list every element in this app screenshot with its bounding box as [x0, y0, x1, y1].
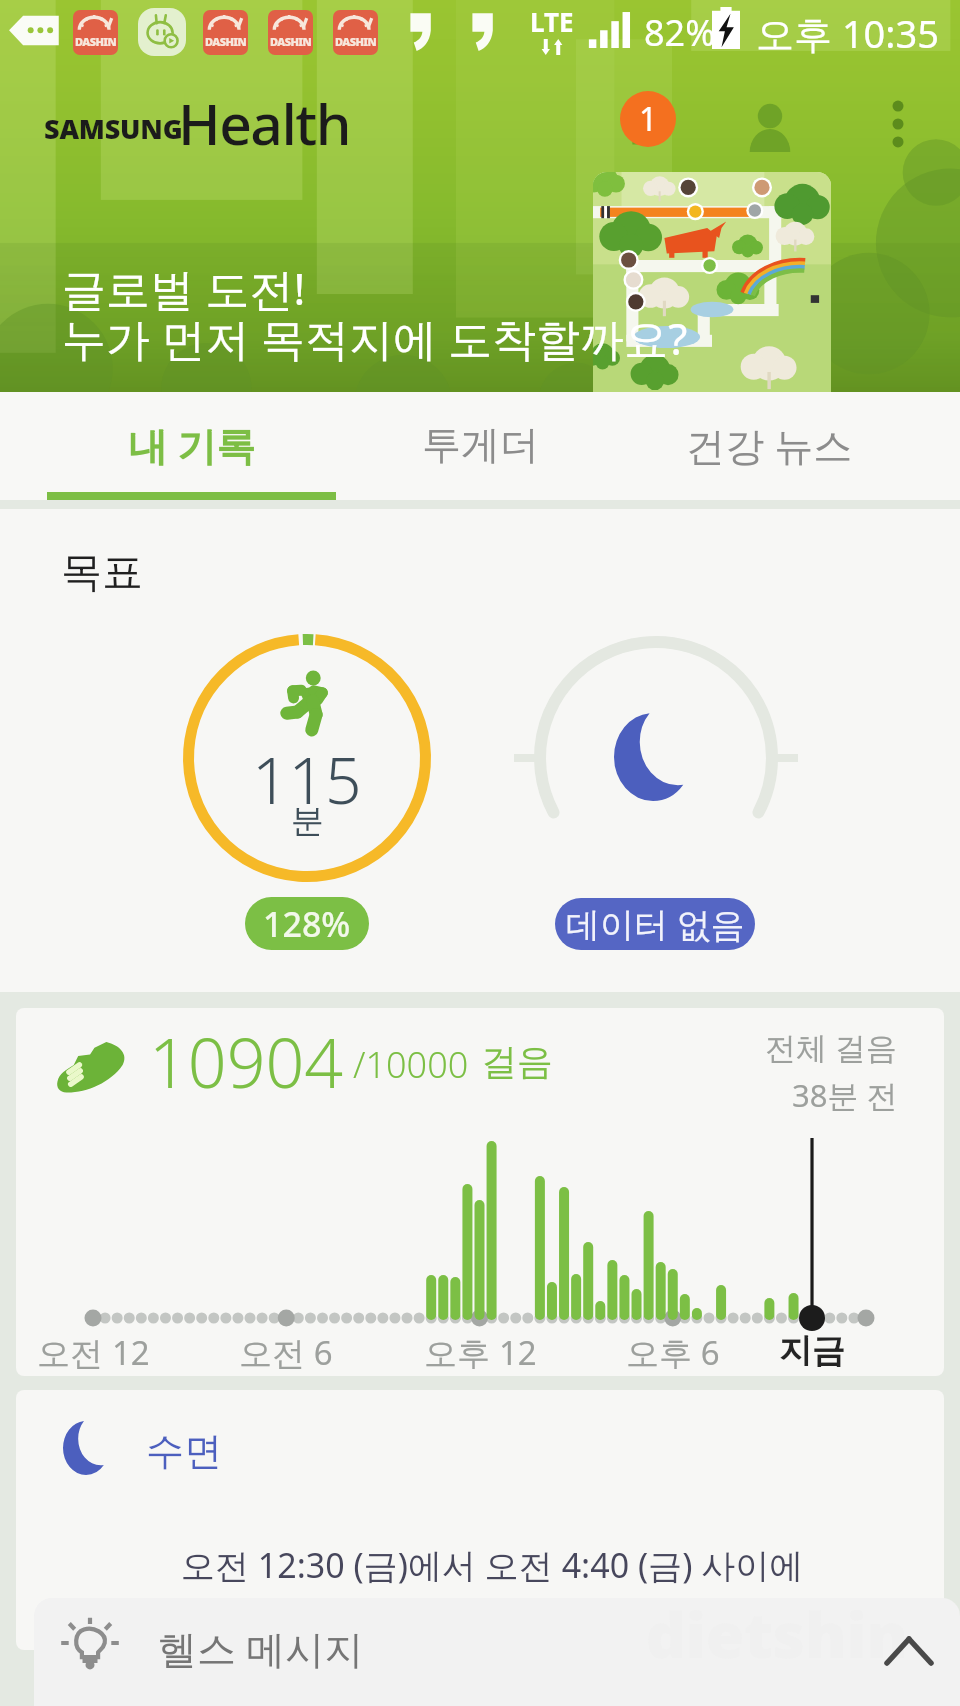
- button[interactable]: 내 기록: [47, 392, 336, 500]
- button[interactable]: Expand health message: [872, 1620, 946, 1682]
- staticText: 걸음: [481, 1039, 553, 1084]
- staticText: 전체 걸음: [765, 1026, 898, 1068]
- staticText: DASHIN: [270, 34, 312, 49]
- button[interactable]: 수면: [16, 1390, 944, 1650]
- staticText: 수면: [146, 1427, 222, 1475]
- staticText: 128%: [263, 901, 351, 947]
- button[interactable]: 투게더: [336, 392, 625, 500]
- button[interactable]: 데이터 없음: [555, 898, 755, 950]
- staticText: 지금: [779, 1330, 845, 1372]
- button[interactable]: Tips: [604, 86, 690, 172]
- staticText: dietshin: [646, 1598, 909, 1676]
- button[interactable]: [593, 172, 831, 392]
- button[interactable]: Profile: [730, 88, 810, 168]
- staticText: 내 기록: [128, 418, 256, 471]
- staticText: DASHIN: [205, 34, 247, 49]
- button[interactable]: More options: [862, 88, 934, 160]
- staticText: 오전 12: [37, 1330, 150, 1375]
- button[interactable]: dietshin: [34, 1598, 960, 1706]
- staticText: 헬스 메시지: [158, 1621, 364, 1674]
- staticText: 글로벌 도전!: [62, 258, 306, 318]
- staticText: 투게더: [422, 420, 539, 469]
- staticText: 38분 전: [792, 1074, 898, 1116]
- button[interactable]: 128%: [245, 897, 369, 950]
- staticText: 오후 10:35: [756, 7, 940, 59]
- staticText: Health: [178, 84, 350, 162]
- staticText: 10904: [149, 1015, 344, 1108]
- staticText: 82%: [644, 8, 716, 57]
- staticText: 데이터 없음: [566, 901, 745, 947]
- button[interactable]: Notifications: [620, 91, 676, 147]
- staticText: 분: [291, 800, 324, 842]
- staticText: 건강 뉴스: [686, 418, 853, 471]
- staticText: DASHIN: [335, 34, 377, 49]
- staticText: /10000: [353, 1040, 469, 1089]
- staticText: 오후 6: [626, 1330, 720, 1375]
- button[interactable]: 건강 뉴스: [625, 392, 914, 500]
- button[interactable]: 10904: [16, 1008, 944, 1376]
- staticText: 오후 12: [424, 1330, 537, 1375]
- staticText: 1: [639, 97, 658, 141]
- staticText: DASHIN: [75, 34, 117, 49]
- staticText: 누가 먼저 목적지에 도착할까요?: [62, 308, 688, 368]
- staticText: 오전 12:30 (금)에서 오전 4:40 (금) 사이에: [181, 1542, 804, 1588]
- staticText: 115: [252, 736, 362, 823]
- staticText: LTE: [530, 4, 574, 39]
- staticText: 목표: [61, 547, 143, 599]
- staticText: SAMSUNG: [44, 110, 183, 147]
- staticText: 오전 6: [239, 1330, 333, 1375]
